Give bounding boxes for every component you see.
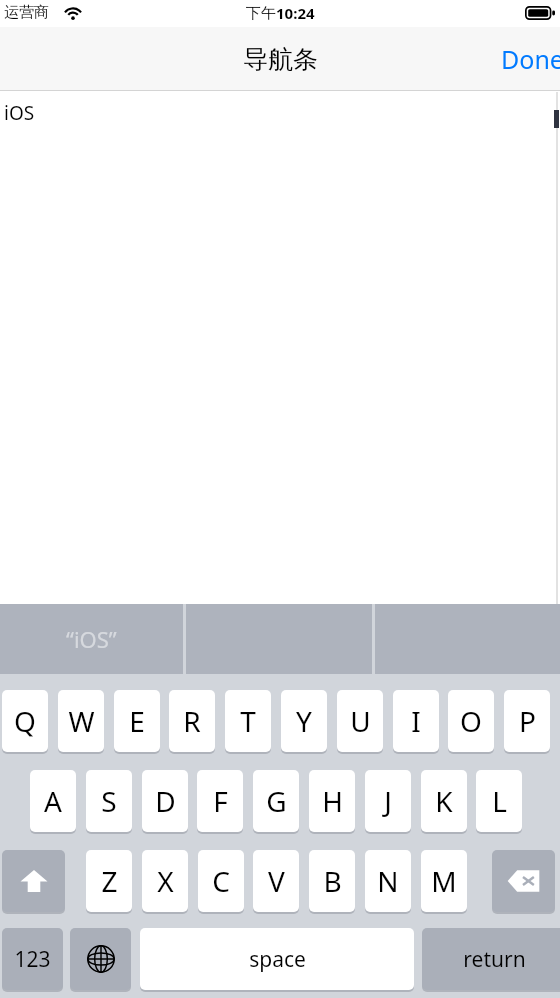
button[interactable]: C	[198, 850, 244, 912]
staticText: “iOS”	[66, 624, 117, 654]
button[interactable]: L	[476, 770, 522, 832]
button[interactable]: P	[504, 690, 550, 752]
button[interactable]: Y	[281, 690, 327, 752]
staticText: A	[44, 782, 62, 820]
button[interactable]: K	[421, 770, 467, 832]
staticText: U	[350, 702, 371, 740]
staticText: 下午	[246, 4, 276, 23]
staticText: W	[68, 702, 95, 740]
staticText: Y	[296, 702, 312, 740]
staticText: F	[213, 782, 228, 820]
button[interactable]: M	[421, 850, 467, 912]
button[interactable]: 123	[2, 928, 63, 990]
staticText: B	[323, 862, 342, 900]
button[interactable]: space	[140, 928, 414, 990]
button[interactable]: E	[114, 690, 160, 752]
staticText: Z	[101, 862, 118, 900]
staticText: return	[463, 945, 526, 974]
button[interactable]: W	[58, 690, 104, 752]
staticText: K	[435, 782, 453, 820]
button[interactable]: return	[422, 928, 560, 990]
staticText: 123	[14, 945, 51, 974]
staticText: R	[183, 702, 201, 740]
staticText: J	[384, 782, 392, 820]
staticText: P	[519, 702, 536, 740]
staticText: E	[129, 702, 145, 740]
button[interactable]: “iOS”	[0, 604, 183, 674]
button[interactable]: Z	[86, 850, 132, 912]
button[interactable]: V	[253, 850, 299, 912]
button[interactable]: F	[197, 770, 243, 832]
staticText: H	[322, 782, 343, 820]
staticText: I	[411, 702, 421, 740]
button[interactable]: O	[448, 690, 494, 752]
staticText: S	[101, 782, 117, 820]
button[interactable]: Done	[493, 36, 560, 82]
staticText: G	[266, 782, 287, 820]
staticText: Q	[14, 702, 36, 740]
staticText: N	[377, 862, 399, 900]
staticText: O	[460, 702, 482, 740]
staticText: V	[268, 862, 285, 900]
staticText: 导航条	[243, 44, 318, 75]
button[interactable]: X	[142, 850, 188, 912]
staticText: 运营商	[4, 3, 49, 22]
button[interactable]: A	[30, 770, 76, 832]
staticText: 10:24	[276, 3, 315, 23]
button[interactable]: Shift	[2, 850, 65, 912]
button[interactable]: H	[309, 770, 355, 832]
staticText: T	[240, 702, 256, 740]
button[interactable]: N	[365, 850, 411, 912]
button[interactable]: G	[253, 770, 299, 832]
button[interactable]: D	[142, 770, 188, 832]
button[interactable]: Q	[2, 690, 48, 752]
button[interactable]: S	[86, 770, 132, 832]
staticText: M	[431, 862, 457, 900]
button[interactable]: Delete	[492, 850, 555, 912]
staticText: Done	[501, 42, 560, 76]
button[interactable]: R	[169, 690, 215, 752]
staticText: X	[157, 862, 174, 900]
button[interactable]: B	[309, 850, 355, 912]
button[interactable]: U	[337, 690, 383, 752]
staticText: iOS	[4, 100, 35, 126]
button[interactable]: T	[225, 690, 271, 752]
staticText: C	[212, 862, 230, 900]
staticText: space	[249, 945, 306, 974]
staticText: L	[492, 782, 507, 820]
staticText: D	[155, 782, 176, 820]
button[interactable]: Change keyboard	[70, 928, 131, 990]
button[interactable]: I	[393, 690, 439, 752]
button[interactable]: J	[365, 770, 411, 832]
